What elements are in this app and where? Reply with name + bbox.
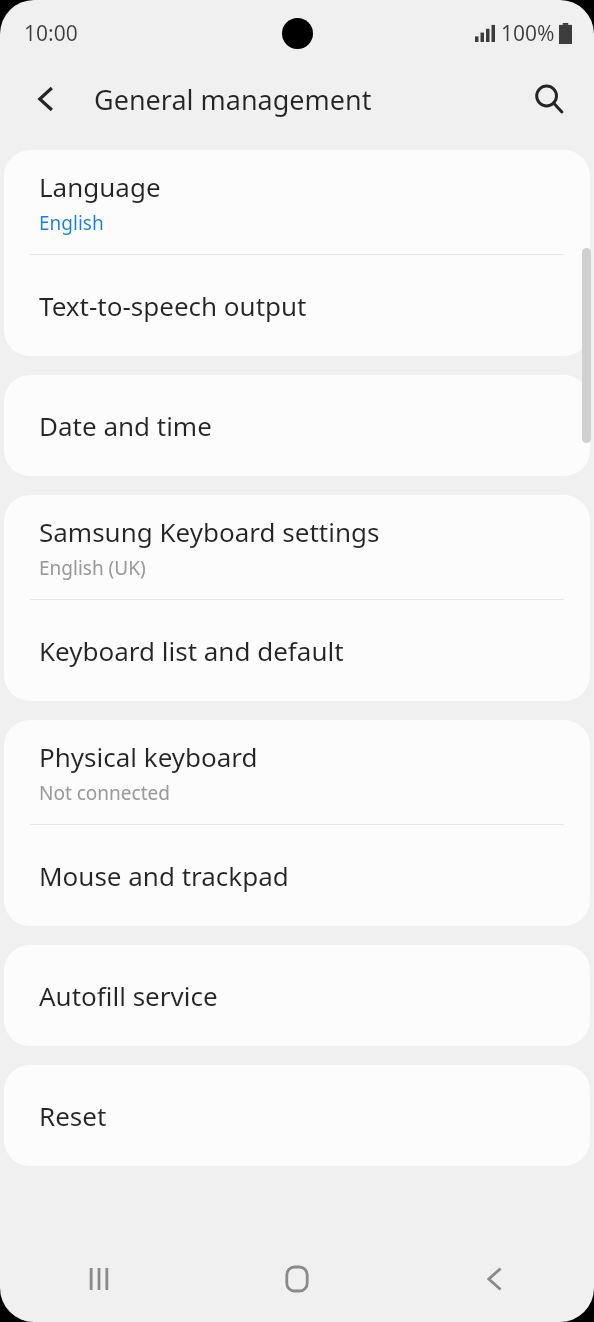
staticText: Physical keyboard [39,739,258,774]
button[interactable]: Date and time [4,375,590,476]
button[interactable]: Samsung Keyboard settings [4,495,590,599]
button[interactable]: Back [396,1236,594,1322]
button[interactable]: Mouse and trackpad [4,825,590,926]
staticText: Samsung Keyboard settings [39,514,380,549]
button[interactable]: Back [18,71,74,127]
staticText: English (UK) [39,555,146,581]
staticText: Text-to-speech output [39,288,307,323]
staticText: Reset [39,1098,107,1133]
button[interactable]: Language [4,150,590,254]
button[interactable]: Text-to-speech output [4,255,590,356]
staticText: 100% [501,19,555,48]
button[interactable]: Keyboard list and default [4,600,590,701]
button[interactable]: Recents [0,1236,198,1322]
staticText: Autofill service [39,978,218,1013]
staticText: English [39,210,104,236]
button[interactable]: Home [198,1236,396,1322]
staticText: Not connected [39,780,170,806]
staticText: 10:00 [24,19,78,48]
button[interactable]: Physical keyboard [4,720,590,824]
staticText: Mouse and trackpad [39,858,289,893]
button[interactable]: Search [520,70,578,128]
button[interactable]: Autofill service [4,945,590,1046]
staticText: Keyboard list and default [39,633,344,668]
staticText: General management [94,81,372,118]
staticText: Date and time [39,408,212,443]
button[interactable]: Reset [4,1065,590,1166]
staticText: Language [39,169,161,204]
